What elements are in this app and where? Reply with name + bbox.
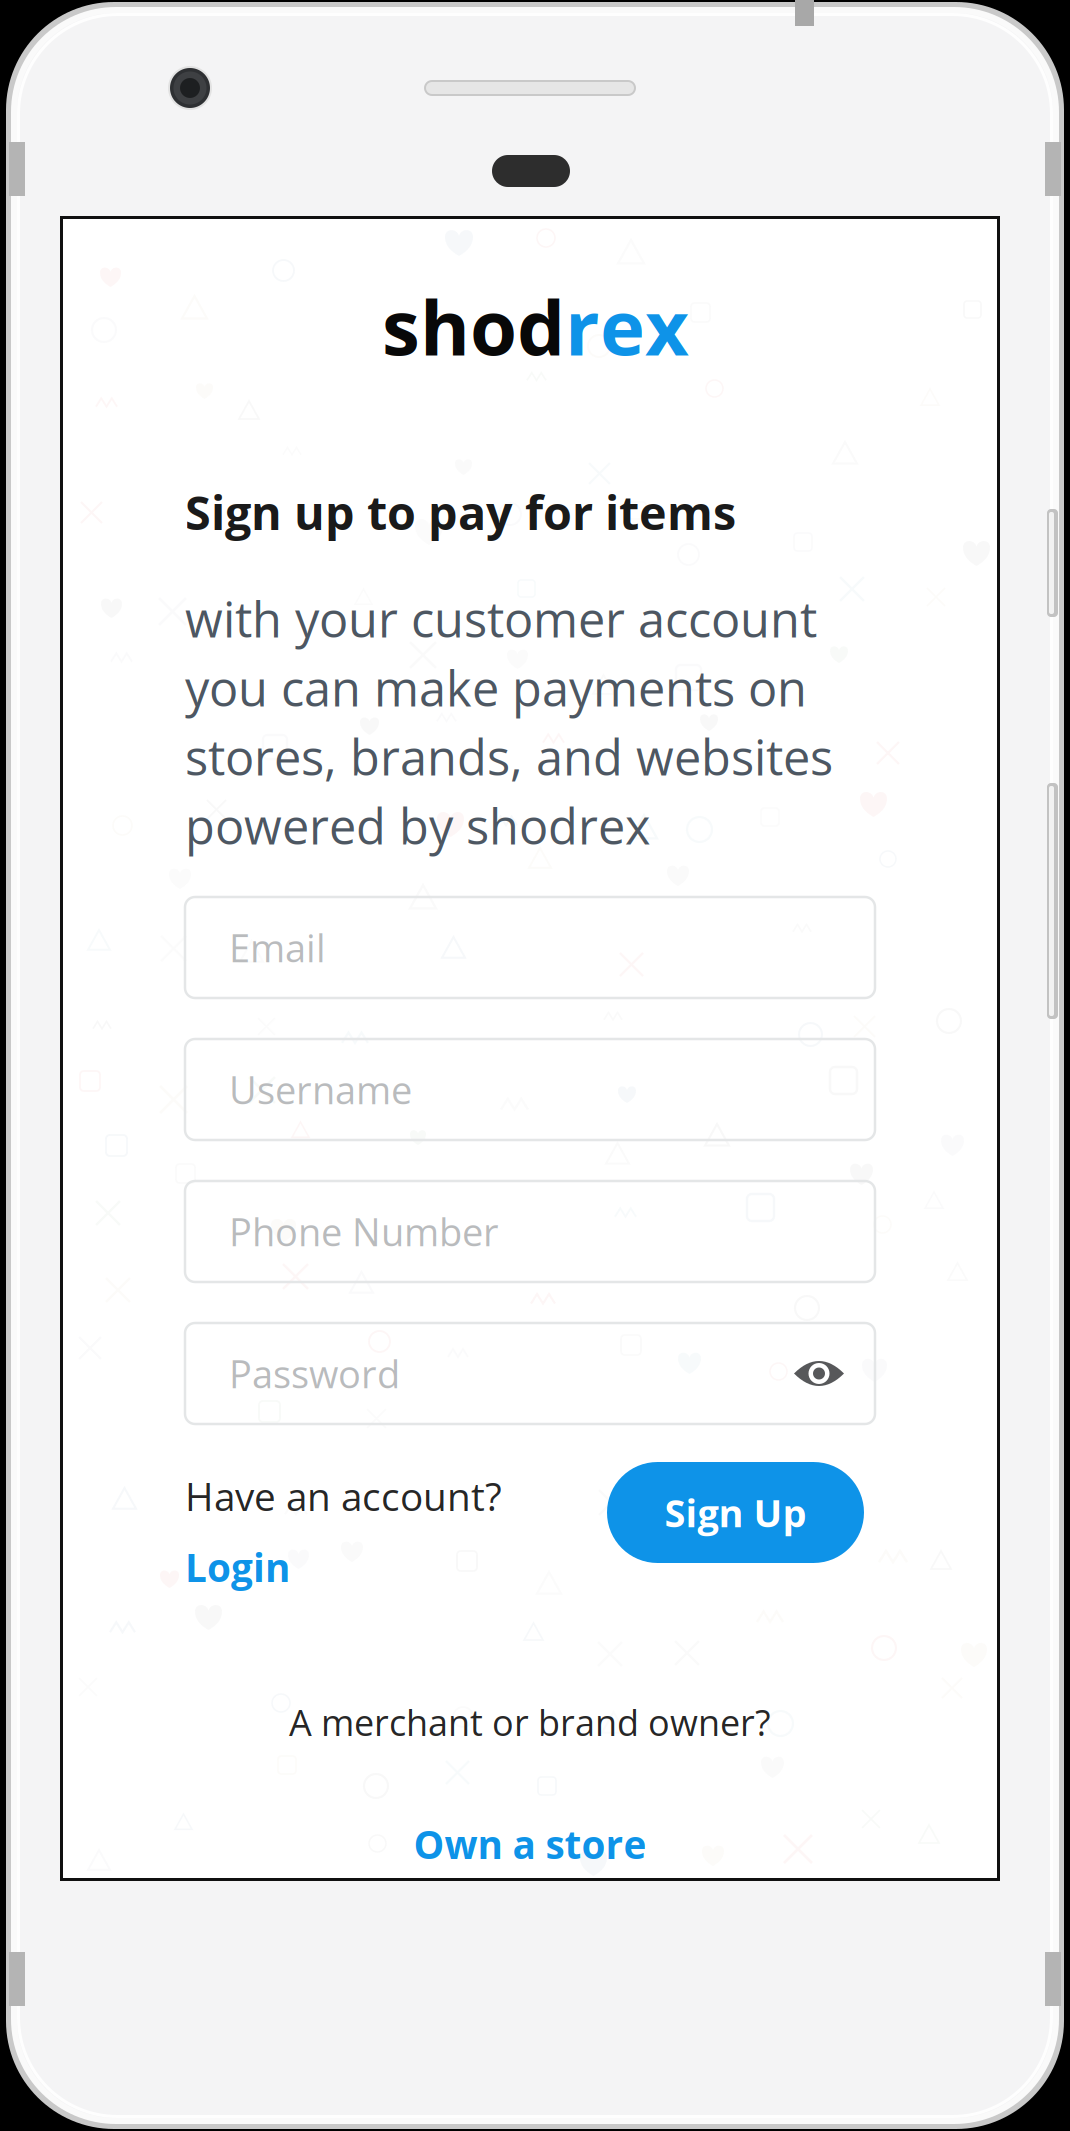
button[interactable]: Email [185,897,875,998]
staticText: powered by shodrex [185,792,650,859]
staticText: stores, brands, and websites [185,723,833,790]
staticText: with your customer account [185,585,817,652]
staticText: you can make payments on [185,654,807,721]
staticText: Sign Up [664,1487,806,1538]
button[interactable]: Own a store [63,1818,997,1870]
staticText: Username [229,1064,412,1115]
staticText: Have an account? [185,1470,502,1522]
staticText: Email [229,922,326,973]
staticText: Own a store [413,1818,646,1870]
button[interactable]: Username [185,1039,875,1140]
staticText: Sign up to pay for items [185,480,736,544]
staticText: shod [382,274,565,378]
staticText: Password [229,1348,400,1399]
staticText: Login [185,1541,290,1593]
button[interactable]: Password [185,1323,875,1424]
button[interactable]: Phone Number [185,1181,875,1282]
staticText: Phone Number [229,1206,499,1257]
button[interactable]: Sign Up [607,1462,864,1563]
button[interactable]: Login [185,1540,445,1594]
staticText: rex [565,274,689,378]
staticText: A merchant or brand owner? [289,1697,771,1746]
